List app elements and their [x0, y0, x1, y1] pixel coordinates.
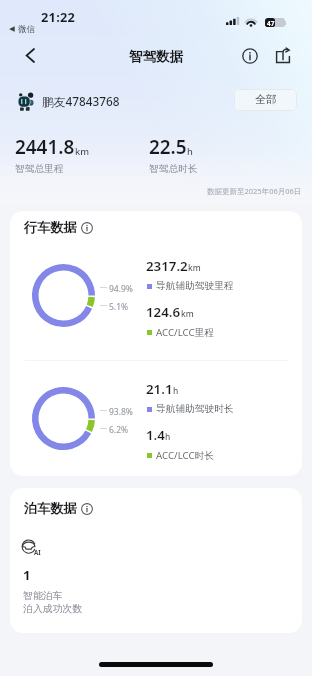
staticText: 数据更新至2025年06月06日 [207, 186, 302, 196]
button[interactable]: 泊车数据 [24, 500, 93, 517]
button[interactable]: 全部 [234, 89, 297, 111]
staticText: 124.6 [146, 303, 181, 321]
staticText: 1.4 [146, 426, 165, 444]
staticText: 6.2% [109, 424, 129, 436]
staticText: ACC/LCC时长 [156, 449, 214, 462]
staticText: 94.9% [109, 283, 133, 295]
staticText: 22.5 [149, 134, 187, 160]
button[interactable]: 行车数据 [24, 219, 93, 236]
staticText: 2317.2 [146, 257, 188, 275]
staticText: h [187, 145, 193, 158]
staticText: 泊车数据 [24, 500, 77, 517]
staticText: 5.1% [109, 301, 129, 313]
staticText: h [173, 385, 179, 396]
staticText: 导航辅助驾驶时长 [156, 403, 234, 415]
button[interactable]: 鹏友47843768 [17, 89, 120, 113]
staticText: 47 [267, 19, 275, 27]
button[interactable]: Back [14, 42, 46, 70]
staticText: 导航辅助驾驶里程 [156, 280, 234, 292]
button[interactable]: Info [235, 42, 265, 70]
staticText: 微信 [18, 24, 35, 35]
staticText: 21:22 [41, 8, 76, 25]
staticText: 鹏友47843768 [42, 93, 120, 109]
staticText: 智驾总时长 [149, 163, 198, 175]
staticText: 智驾总里程 [15, 163, 64, 175]
staticText: ACC/LCC里程 [156, 326, 214, 339]
staticText: 2441.8 [15, 134, 75, 160]
staticText: km [75, 145, 90, 158]
staticText: h [165, 431, 171, 442]
staticText: 智能泊车 [23, 589, 63, 601]
staticText: km [181, 308, 194, 319]
staticText: 1 [23, 566, 31, 584]
staticText: 21.1 [146, 380, 173, 398]
staticText: km [188, 262, 201, 273]
staticText: 行车数据 [24, 219, 77, 236]
staticText: 93.8% [109, 406, 133, 418]
staticText: 全部 [255, 93, 277, 107]
staticText: 泊入成功次数 [23, 602, 83, 614]
button[interactable]: Share [268, 41, 298, 69]
staticText: ◀ [9, 24, 15, 33]
staticText: AI [34, 548, 41, 556]
staticText: 智驾数据 [129, 48, 184, 65]
